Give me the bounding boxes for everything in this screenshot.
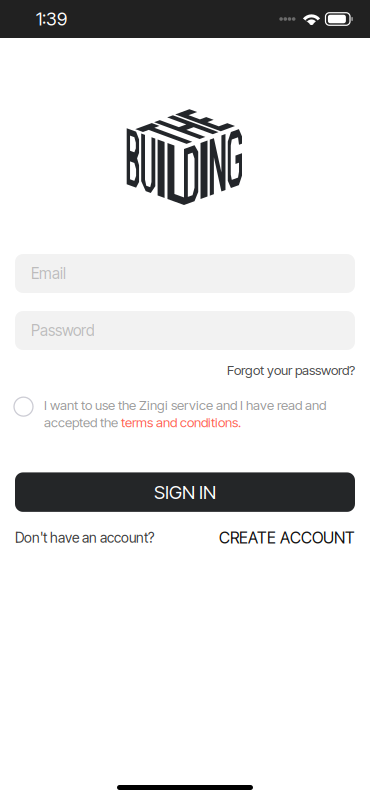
staticText: CREATE ACCOUNT	[219, 528, 355, 547]
staticText: accepted the	[44, 414, 121, 430]
staticText: 1:39	[36, 8, 67, 30]
staticText: Don't have an account?	[15, 529, 154, 546]
staticText: SIGN IN	[154, 481, 216, 503]
button[interactable]: Password	[15, 311, 355, 350]
button[interactable]: Email	[15, 254, 355, 293]
button[interactable]: Accept terms and conditions	[14, 397, 33, 416]
button[interactable]: Forgot your password?	[0, 350, 370, 378]
staticText: Email	[31, 264, 66, 283]
button[interactable]: terms and conditions.	[121, 414, 241, 430]
staticText: terms and conditions.	[121, 414, 241, 430]
button[interactable]: SIGN IN	[0, 472, 370, 512]
button[interactable]: CREATE ACCOUNT	[219, 528, 355, 547]
staticText: Password	[31, 321, 95, 340]
staticText: I want to use the Zingi service and I ha…	[44, 397, 326, 413]
staticText: Forgot your password?	[227, 362, 355, 378]
